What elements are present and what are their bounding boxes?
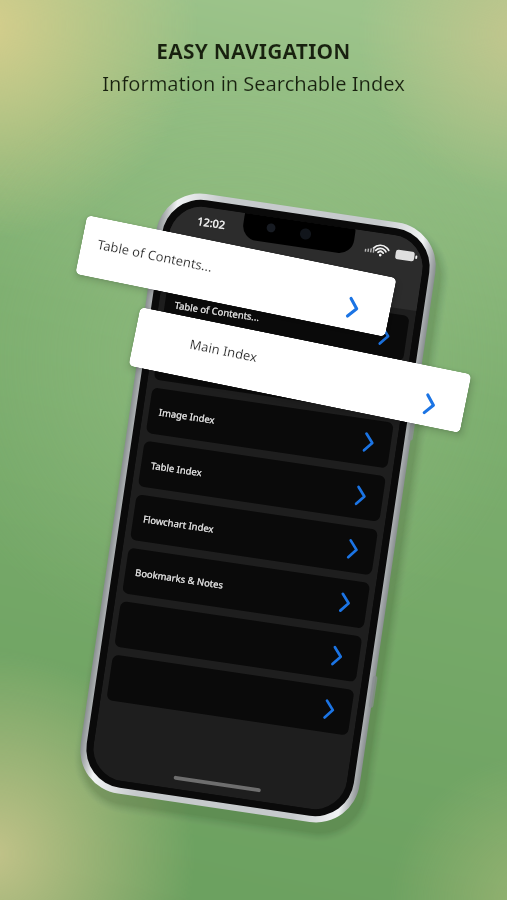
staticText: Bookmarks & Notes xyxy=(134,566,224,592)
button[interactable] xyxy=(114,601,362,682)
button[interactable]: Back xyxy=(178,235,217,274)
staticText: 12:02 xyxy=(196,213,227,232)
button[interactable]: Bookmarks & Notes xyxy=(122,548,370,629)
button[interactable]: Table of Contents... xyxy=(75,215,397,337)
button[interactable]: Table Index xyxy=(138,441,386,522)
staticText: Table of Contents... xyxy=(96,235,214,276)
staticText: Table Index xyxy=(150,459,203,479)
staticText: Choose Index Type xyxy=(243,257,342,287)
staticText: Main Index xyxy=(188,335,259,366)
staticText: Image Index xyxy=(158,406,216,427)
staticText: EASY NAVIGATION xyxy=(156,37,351,66)
staticText: Flowchart Index xyxy=(142,512,215,536)
staticText: Information in Searchable Index xyxy=(102,70,405,97)
button[interactable]: Image Index xyxy=(146,387,394,468)
staticText: Main Index xyxy=(166,352,217,372)
button[interactable]: Table of Contents... xyxy=(162,280,410,362)
button[interactable]: Main Index xyxy=(154,334,402,415)
staticText: Table of Contents... xyxy=(174,299,261,324)
button[interactable]: Main Index xyxy=(128,307,472,433)
button[interactable]: Flowchart Index xyxy=(130,494,378,575)
